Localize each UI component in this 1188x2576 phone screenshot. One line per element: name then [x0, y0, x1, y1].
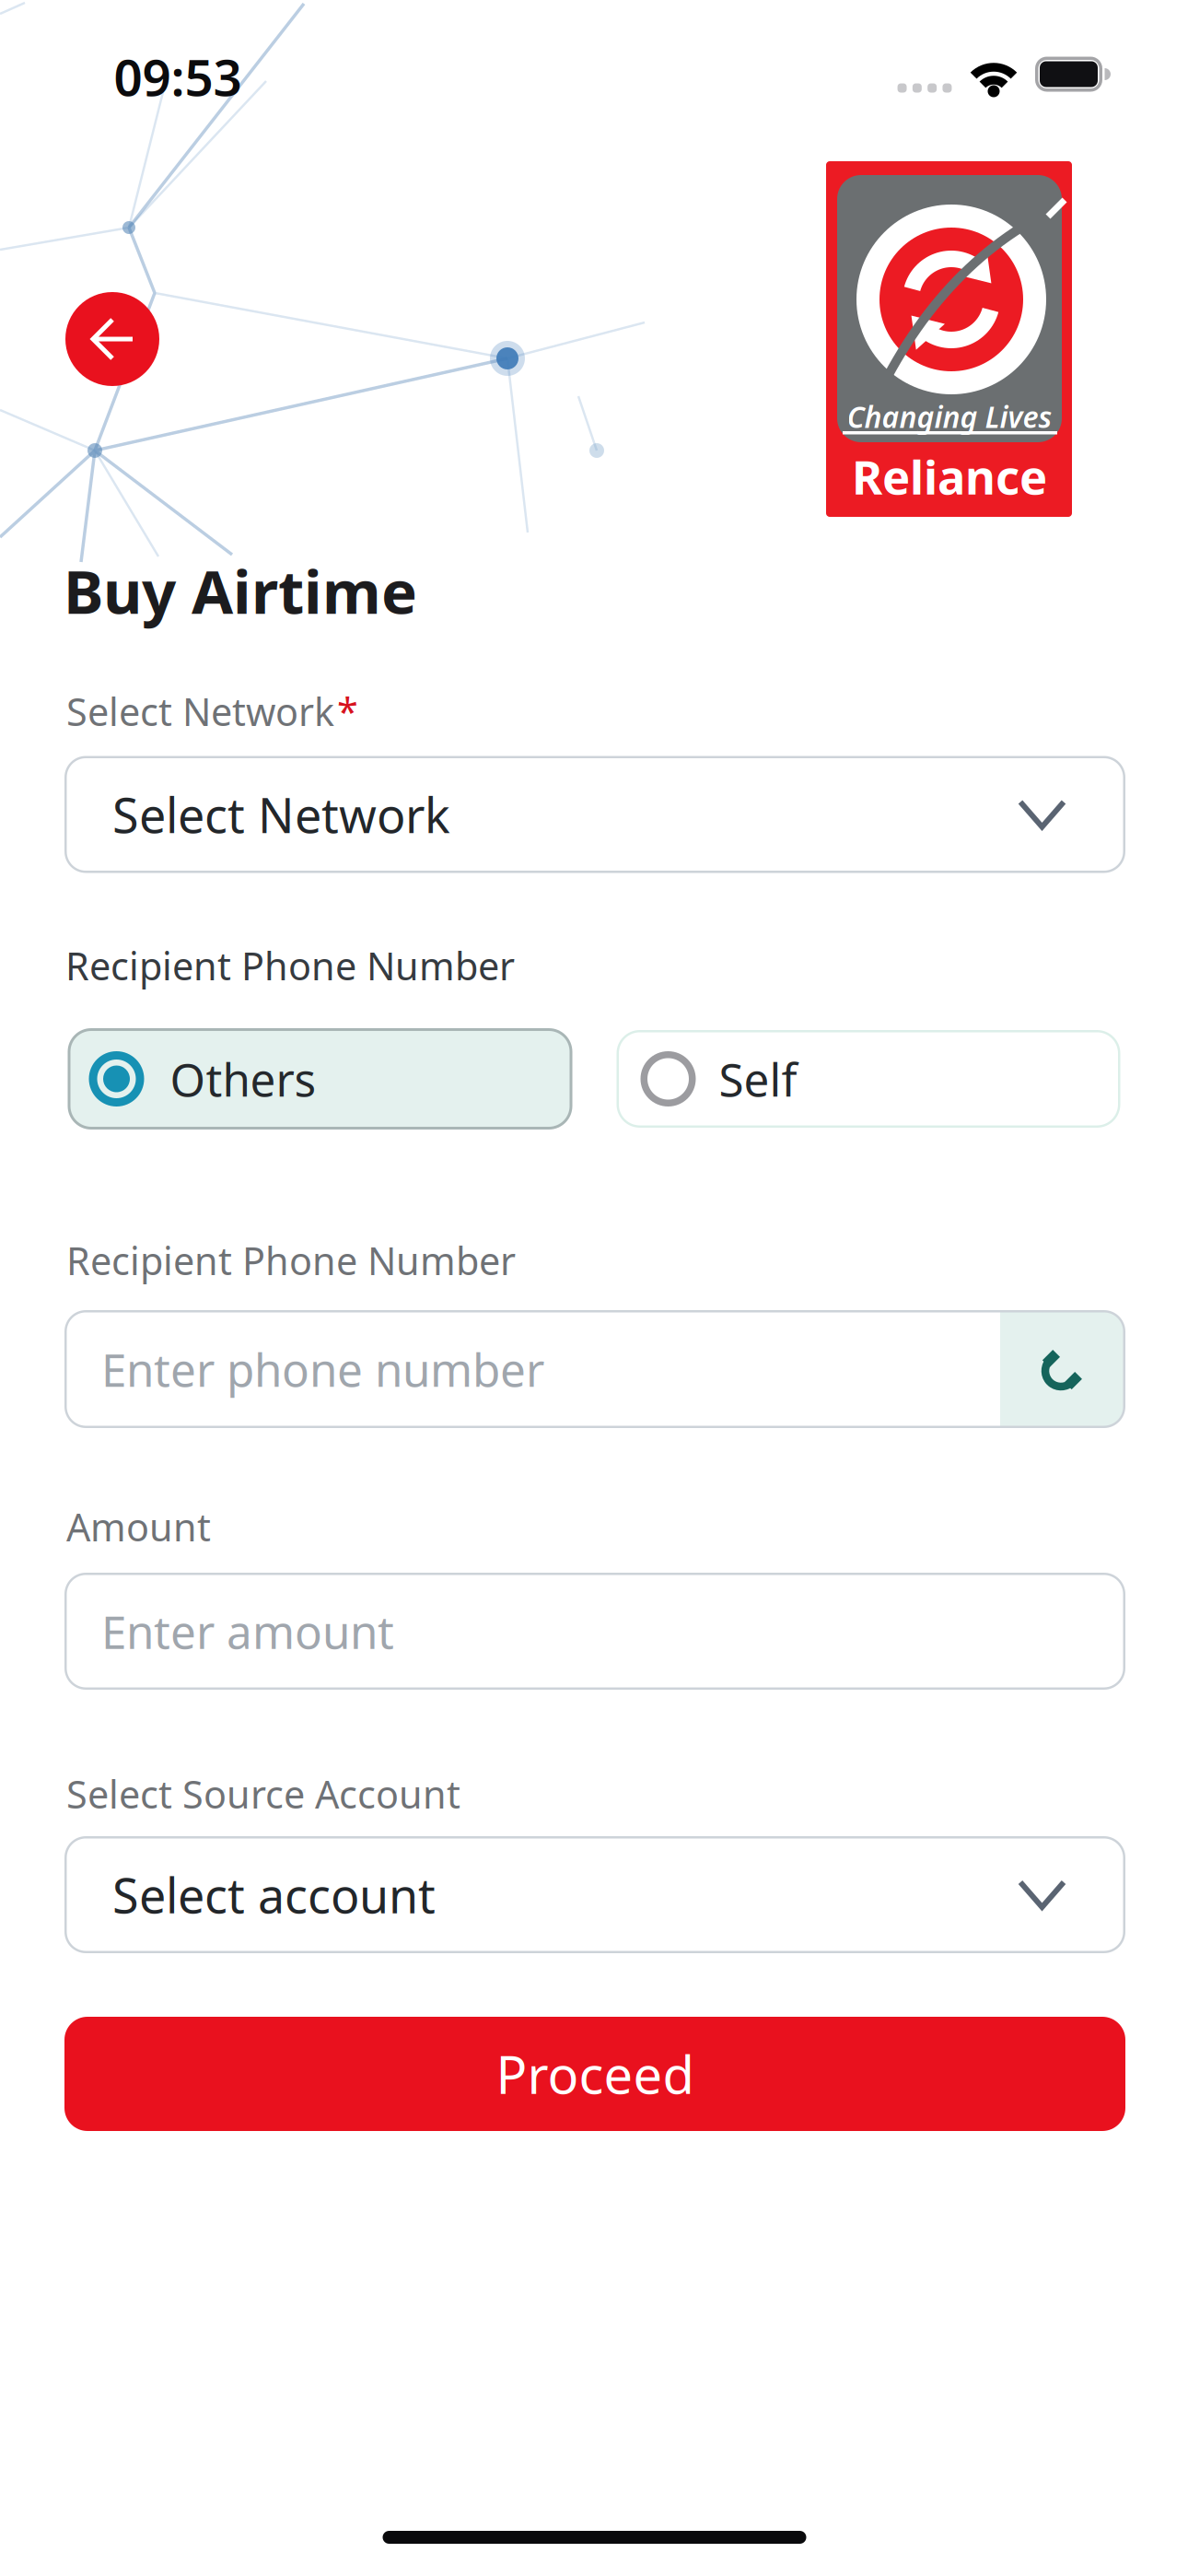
button[interactable]: Select account — [64, 1836, 1125, 1953]
staticText: Select Network — [112, 783, 450, 846]
button[interactable]: Enter phone number — [64, 1310, 1125, 1428]
button[interactable]: Others — [68, 1028, 572, 1130]
staticText: Reliance — [852, 445, 1047, 507]
button[interactable]: Enter amount — [64, 1573, 1125, 1690]
staticText: Recipient Phone Number — [65, 940, 515, 991]
staticText: Select Network — [66, 686, 334, 737]
staticText: Buy Airtime — [64, 551, 417, 631]
staticText: Recipient Phone Number — [66, 1235, 516, 1286]
staticText: Enter amount — [101, 1601, 394, 1661]
staticText: Others — [170, 1049, 316, 1109]
staticText: * — [337, 686, 358, 737]
staticText: Changing Lives — [847, 397, 1052, 436]
staticText: 09:53 — [114, 43, 242, 110]
staticText: Proceed — [496, 2040, 694, 2108]
staticText: Enter phone number — [101, 1339, 544, 1399]
button[interactable]: Proceed — [64, 2017, 1125, 2131]
staticText: Amount — [66, 1501, 211, 1552]
staticText: Self — [719, 1049, 797, 1109]
staticText: Select account — [112, 1863, 436, 1927]
button[interactable]: Self — [617, 1030, 1120, 1128]
staticText: Select Source Account — [66, 1769, 460, 1819]
button[interactable]: Select Network — [64, 756, 1125, 873]
button[interactable]: Back — [65, 292, 159, 386]
